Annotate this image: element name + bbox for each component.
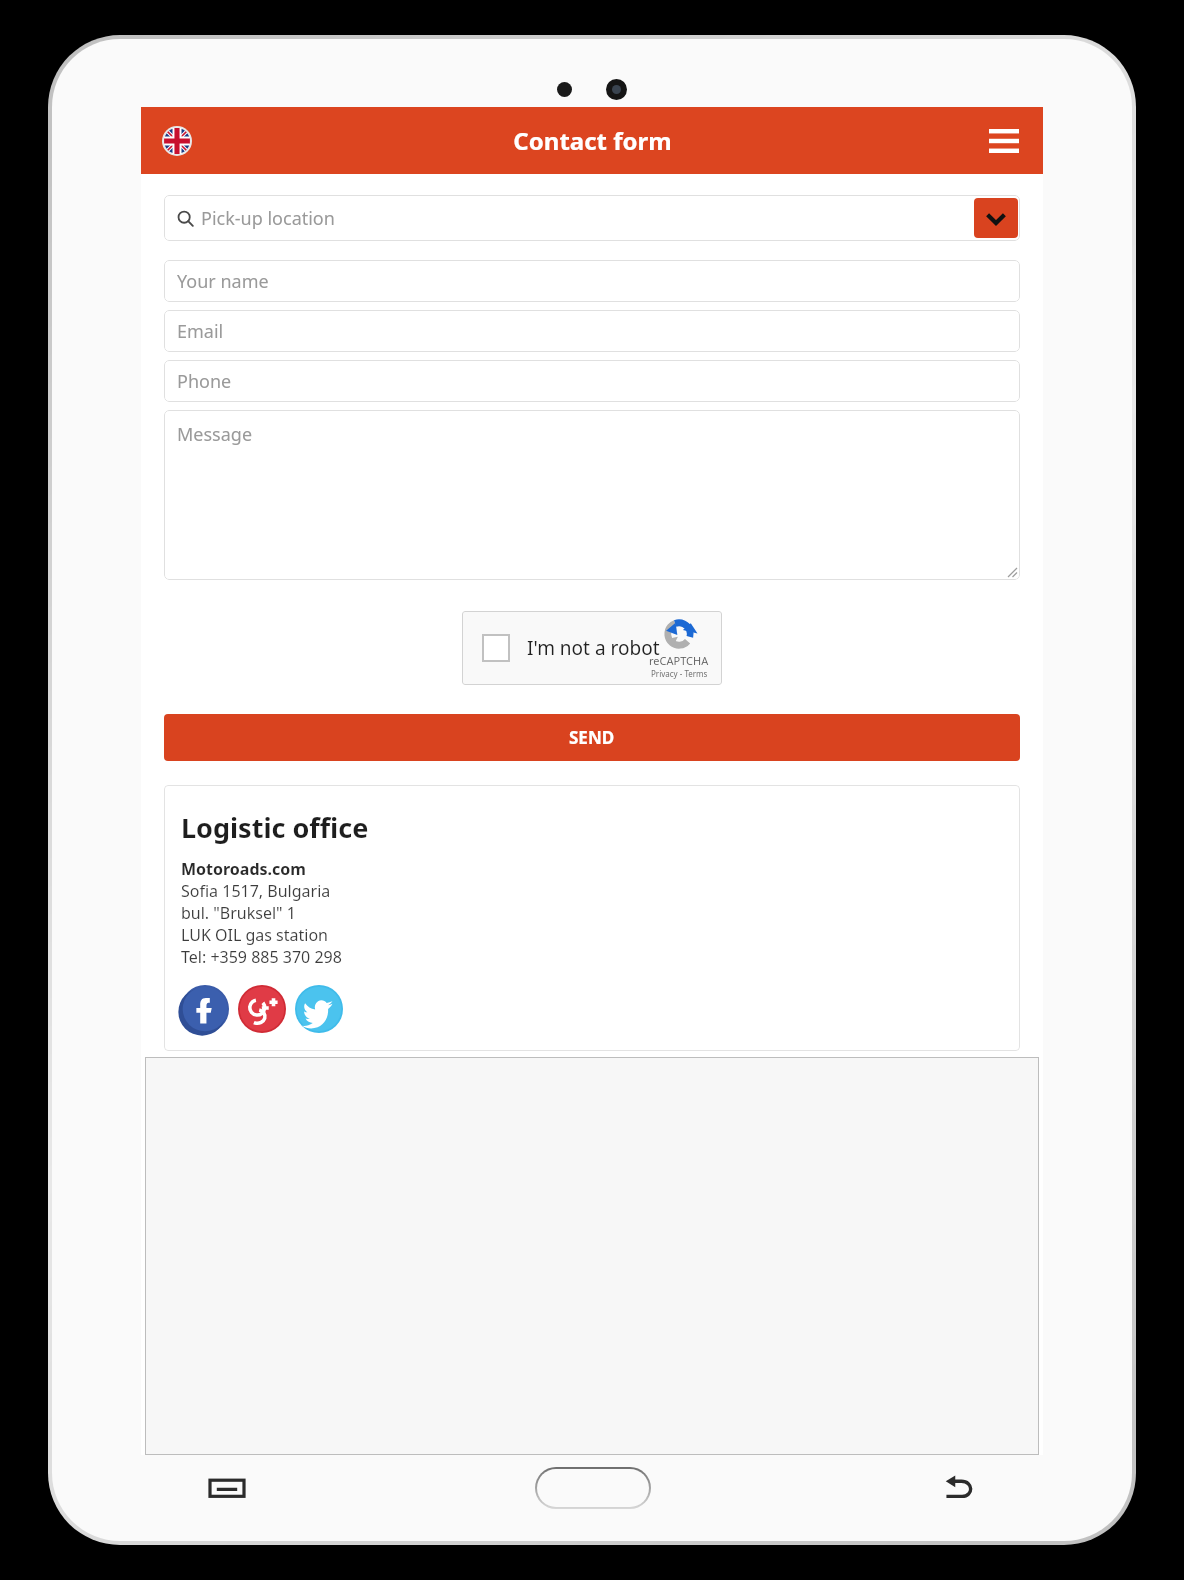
- staticText: reCAPTCHA: [649, 653, 709, 668]
- button[interactable]: Recent apps: [52, 1457, 401, 1519]
- staticText: bul. "Bruksel" 1: [181, 902, 296, 924]
- button[interactable]: SEND: [164, 714, 1020, 761]
- staticText: Pick-up location: [201, 206, 335, 231]
- staticText: LUK OIL gas station: [181, 924, 328, 946]
- button[interactable]: I'm not a robot: [462, 611, 722, 685]
- button[interactable]: Pick-up location: [164, 195, 1020, 241]
- staticText: Privacy - Terms: [651, 668, 708, 679]
- staticText: Contact form: [513, 124, 672, 157]
- staticText: SEND: [569, 726, 615, 749]
- staticText: Message: [177, 422, 253, 447]
- button[interactable]: Phone: [164, 360, 1020, 402]
- staticText: Sofia 1517, Bulgaria: [181, 880, 331, 902]
- staticText: Tel: +359 885 370 298: [181, 946, 342, 968]
- button[interactable]: Twitter: [295, 985, 343, 1033]
- button[interactable]: Message: [164, 410, 1020, 580]
- button[interactable]: Back: [784, 1457, 1132, 1519]
- button[interactable]: Home: [401, 1457, 784, 1519]
- button[interactable]: Open list: [974, 198, 1018, 238]
- button[interactable]: Facebook: [181, 985, 229, 1033]
- button[interactable]: Language: [160, 124, 194, 158]
- staticText: Logistic office: [181, 809, 369, 846]
- staticText: I'm not a robot: [527, 635, 660, 661]
- button[interactable]: Google Plus: [238, 985, 286, 1033]
- staticText: Phone: [177, 369, 232, 394]
- staticText: Email: [177, 319, 224, 344]
- staticText: Your name: [177, 269, 269, 294]
- button[interactable]: Your name: [164, 260, 1020, 302]
- button[interactable]: Email: [164, 310, 1020, 352]
- staticText: Motoroads.com: [181, 858, 306, 880]
- button[interactable]: Menu: [979, 116, 1029, 166]
